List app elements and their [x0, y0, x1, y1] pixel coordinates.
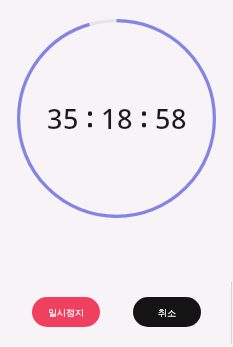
staticText: 58	[155, 100, 187, 137]
button[interactable]: 취소	[133, 297, 201, 327]
button[interactable]: 일시정지	[32, 297, 100, 327]
staticText: 35	[47, 100, 79, 137]
staticText: 일시정지	[48, 307, 84, 318]
staticText: 취소	[158, 307, 176, 318]
staticText: 18	[101, 100, 133, 137]
